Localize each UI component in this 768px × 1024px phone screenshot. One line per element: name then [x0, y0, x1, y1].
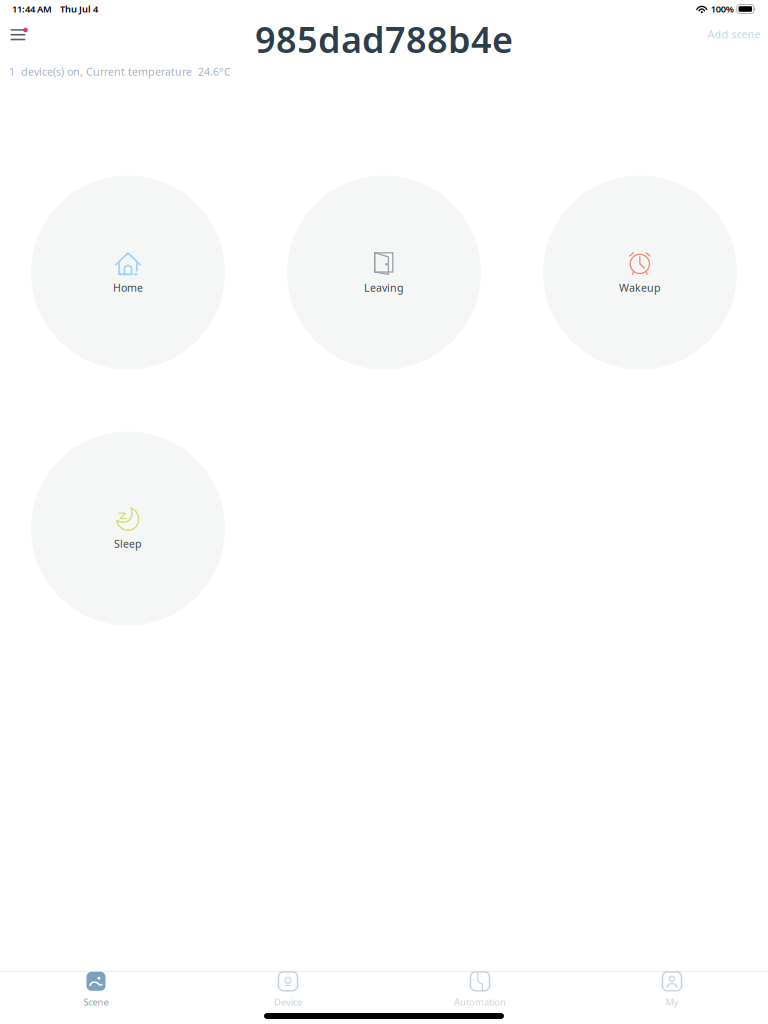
button[interactable]: Device	[192, 972, 384, 1008]
staticText: Sleep	[114, 537, 142, 551]
button[interactable]: Scene	[0, 972, 192, 1008]
button[interactable]: Sleep	[31, 431, 225, 625]
button[interactable]: Automation	[384, 972, 576, 1008]
button[interactable]: Leaving	[287, 175, 481, 369]
staticText: 100%	[711, 3, 734, 15]
staticText: Device	[274, 996, 302, 1008]
staticText: 985dad788b4e	[255, 15, 513, 63]
staticText: Home	[113, 281, 143, 295]
staticText: Thu Jul 4	[60, 3, 98, 15]
staticText: Add scene	[707, 27, 760, 41]
button[interactable]: My	[576, 972, 768, 1008]
staticText: Scene	[83, 996, 108, 1008]
staticText: Leaving	[364, 281, 404, 295]
button[interactable]: Home	[31, 175, 225, 369]
button[interactable]: Menu	[4, 21, 31, 48]
button[interactable]: Add scene	[703, 22, 764, 46]
staticText: My	[665, 996, 678, 1008]
button[interactable]: Wakeup	[543, 175, 737, 369]
staticText: 11:44 AM	[12, 3, 52, 15]
staticText: 1 device(s) on, Current temperature 24.6…	[9, 64, 231, 79]
staticText: Automation	[454, 996, 506, 1008]
staticText: Wakeup	[619, 281, 661, 295]
